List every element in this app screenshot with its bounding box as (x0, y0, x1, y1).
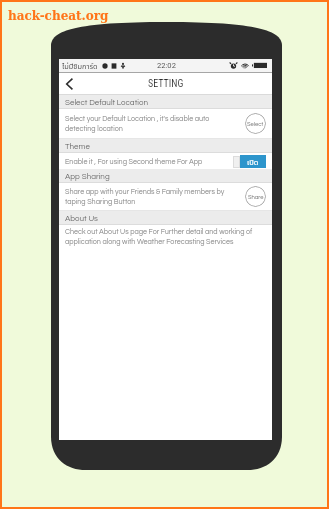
staticText: Select Default Location (65, 98, 148, 106)
staticText: Select (247, 121, 264, 127)
staticText: SETTING (148, 78, 184, 90)
staticText: ไม่มีซิมการ์ด (62, 61, 98, 71)
button[interactable]: Share app with your Friends & Family mem… (59, 183, 272, 210)
button[interactable]: Check out About Us page For Further deta… (59, 225, 272, 250)
button[interactable]: Theme toggle (233, 155, 266, 168)
staticText: Share (248, 194, 264, 200)
staticText: Enable it , For using Second theme For A… (65, 158, 233, 165)
staticText: App Sharing (65, 172, 110, 180)
staticText: Check out About Us page For Further deta… (65, 228, 264, 245)
staticText: 22:02 (157, 61, 176, 70)
staticText: hack-cheat.org (8, 9, 109, 23)
staticText: เปิด (247, 157, 259, 167)
button[interactable]: Back (59, 73, 80, 94)
staticText: Select your Default Location , it's disa… (65, 115, 239, 132)
staticText: Share app with your Friends & Family mem… (65, 188, 239, 205)
button[interactable]: Select your Default Location , it's disa… (59, 109, 272, 138)
staticText: About Us (65, 214, 98, 222)
staticText: Theme (65, 142, 90, 150)
